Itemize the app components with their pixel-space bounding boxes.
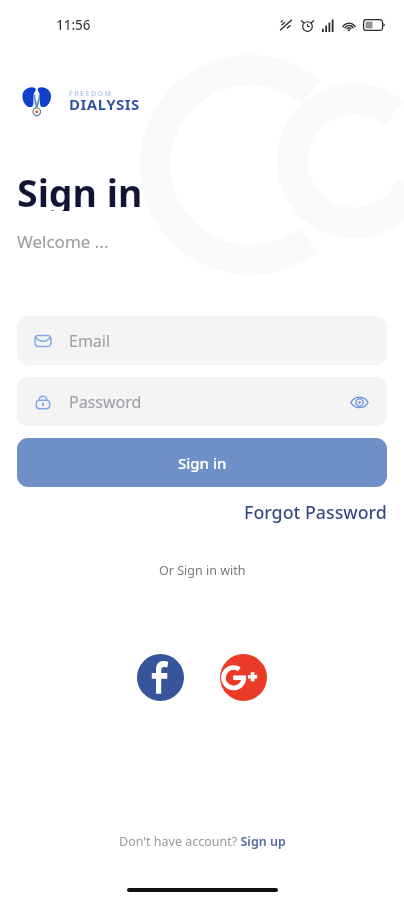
staticText: Sign in <box>17 167 143 211</box>
staticText: Or Sign in with <box>159 562 246 579</box>
staticText: Forgot Password <box>244 500 387 524</box>
button[interactable]: Sign in with Google <box>220 654 267 701</box>
button[interactable]: Sign in with Facebook <box>137 654 184 701</box>
staticText: Sign in <box>178 453 227 473</box>
staticText: Don't have account? Sign up <box>119 833 286 850</box>
button[interactable]: Password <box>17 377 387 426</box>
button[interactable]: Forgot Password <box>244 498 387 526</box>
staticText: Email <box>69 330 111 352</box>
staticText: Password <box>69 391 142 413</box>
staticText: Welcome ... <box>17 230 109 253</box>
button[interactable]: Email <box>17 316 387 365</box>
button[interactable]: Don't have account? Sign up <box>0 833 404 850</box>
staticText: DIALYSIS <box>69 94 140 114</box>
staticText: FREEDOM <box>69 89 113 99</box>
button[interactable]: Show password <box>347 390 371 414</box>
staticText: 11:56 <box>56 16 91 34</box>
button[interactable]: Sign in <box>17 438 387 487</box>
